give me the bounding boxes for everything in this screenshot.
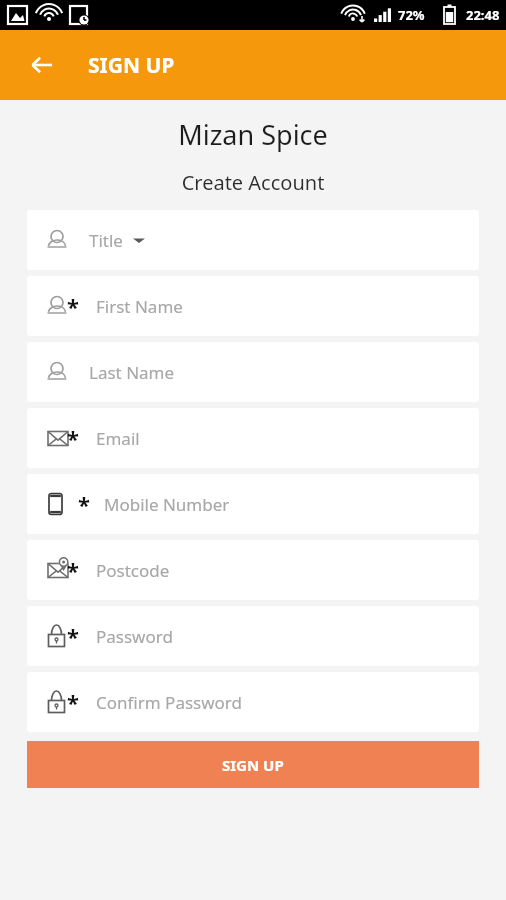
staticText: Title [89, 229, 123, 252]
button[interactable]: * [27, 474, 479, 534]
button[interactable]: SIGN UP [27, 741, 479, 788]
staticText: * [67, 291, 79, 314]
staticText: * [78, 489, 90, 512]
staticText: SIGN UP [222, 755, 284, 775]
button[interactable]: Last Name [27, 342, 479, 402]
staticText: Postcode [96, 559, 170, 582]
staticText: First Name [96, 295, 183, 318]
staticText: Mobile Number [104, 493, 230, 516]
staticText: Password [96, 625, 173, 648]
staticText: Create Account [0, 169, 506, 196]
staticText: Email [96, 427, 140, 450]
button[interactable]: * [27, 540, 479, 600]
staticText: * [67, 621, 79, 644]
staticText: * [67, 423, 79, 446]
staticText: 72% [398, 6, 425, 24]
staticText: SIGN UP [88, 51, 175, 80]
staticText: Last Name [89, 361, 175, 384]
staticText: Confirm Password [96, 691, 242, 714]
button[interactable]: Title [27, 210, 479, 270]
button[interactable]: Back [22, 45, 62, 85]
button[interactable]: * [27, 606, 479, 666]
button[interactable]: * [27, 276, 479, 336]
staticText: 22:48 [466, 6, 500, 24]
button[interactable]: * [27, 408, 479, 468]
staticText: Mizan Spice [0, 116, 506, 153]
button[interactable]: * [27, 672, 479, 732]
staticText: * [67, 687, 79, 710]
staticText: * [67, 555, 79, 578]
